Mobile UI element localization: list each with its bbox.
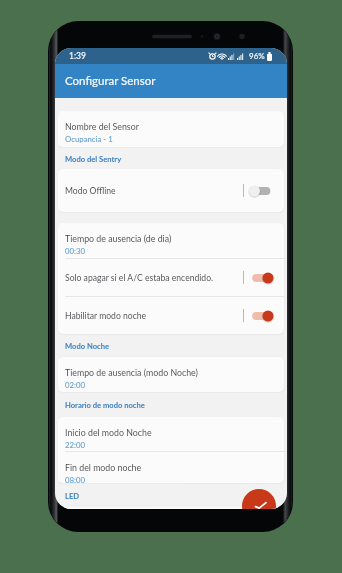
button[interactable]: Solo apagar si el A/C estaba encendido. — [58, 259, 284, 296]
staticText: Modo del Sentry — [65, 154, 122, 163]
button[interactable]: Fin del modo noche — [58, 452, 284, 483]
staticText: Tiempo de ausencia (modo Noche) — [65, 367, 198, 378]
staticText: 96% — [249, 51, 265, 61]
staticText: Modo Offline — [65, 186, 243, 196]
staticText: Fin del modo noche — [65, 462, 142, 473]
staticText: LED — [65, 491, 80, 500]
button[interactable]: Habilitar modo noche — [58, 297, 284, 334]
staticText: 22:00 — [65, 440, 86, 449]
staticText: Solo apagar si el A/C estaba encendido. — [65, 273, 243, 283]
button[interactable]: Modo Offline — [58, 169, 284, 212]
staticText: 02:00 — [65, 380, 86, 389]
button[interactable]: Inicio del modo Noche — [58, 417, 284, 451]
button[interactable]: Guardar — [242, 489, 276, 509]
button[interactable]: Tiempo de ausencia (de dia) — [58, 223, 284, 258]
staticText: 00:30 — [65, 246, 86, 255]
staticText: Configurar Sensor — [65, 74, 156, 88]
staticText: 08:00 — [65, 475, 86, 483]
staticText: Nombre del Sensor — [65, 121, 139, 132]
staticText: Horario de modo noche — [65, 400, 145, 409]
staticText: Inicio del modo Noche — [65, 427, 152, 438]
staticText: Habilitar modo noche — [65, 311, 243, 321]
staticText: Modo Noche — [65, 341, 110, 350]
staticText: Ocupancia - 1 — [65, 134, 113, 143]
staticText: 1:39 — [69, 51, 86, 61]
button[interactable]: Tiempo de ausencia (modo Noche) — [58, 357, 284, 392]
staticText: Tiempo de ausencia (de dia) — [65, 233, 172, 244]
button[interactable]: Nombre del Sensor — [58, 111, 284, 147]
